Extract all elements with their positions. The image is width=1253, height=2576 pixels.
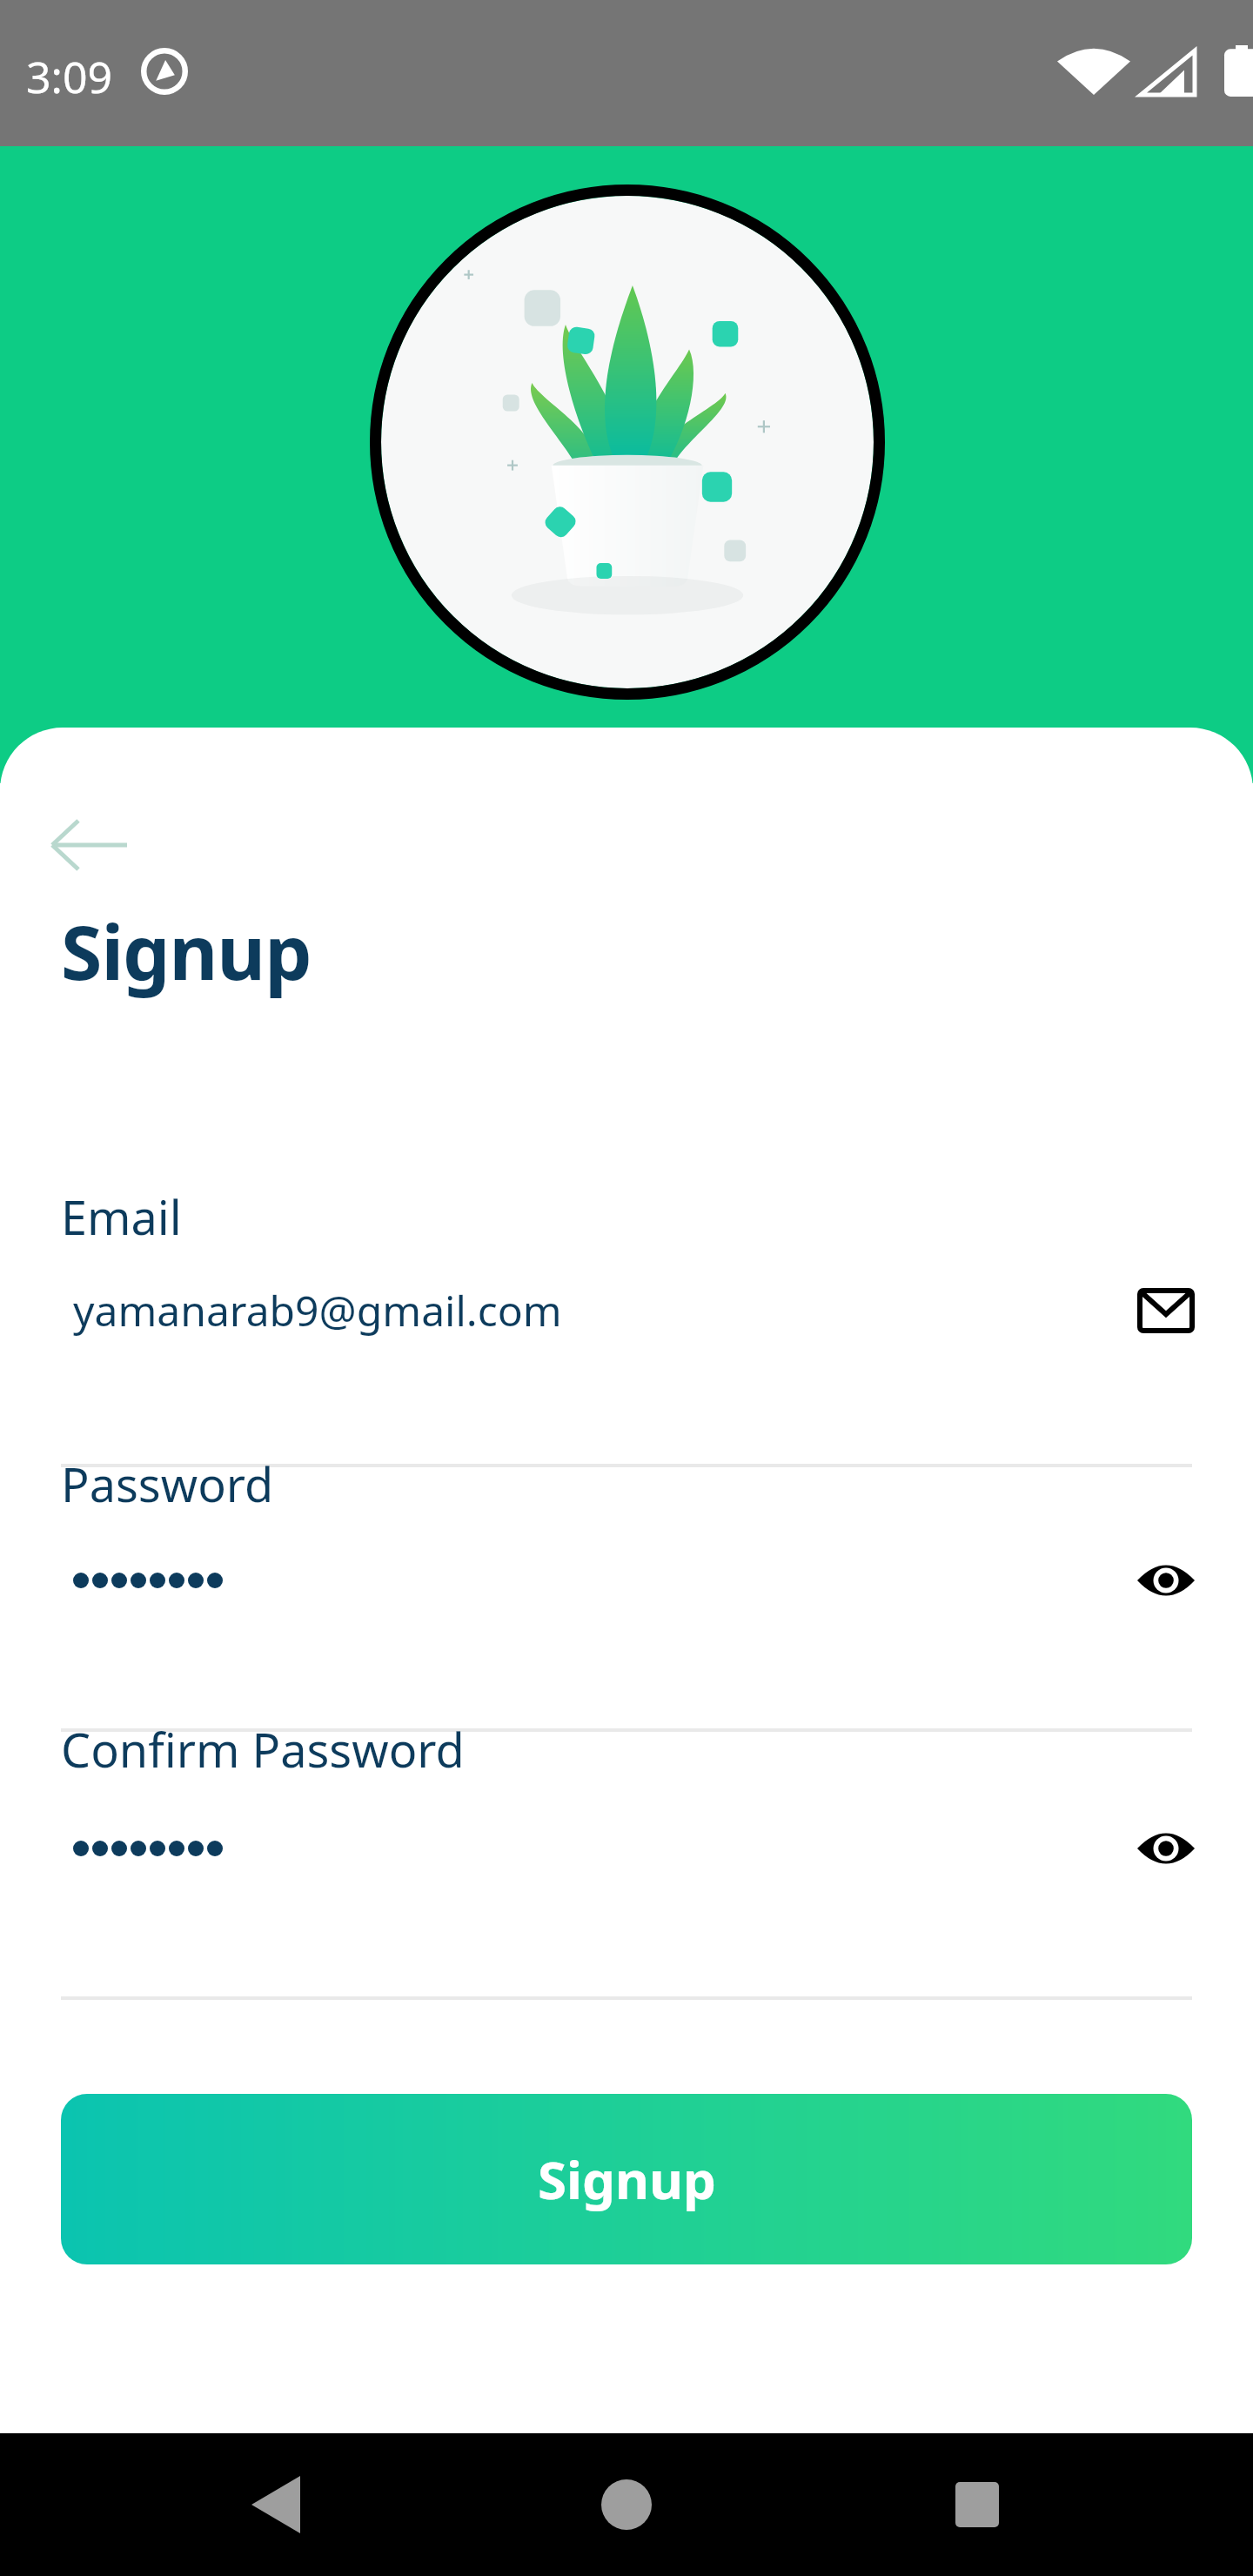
button[interactable]: Email	[1114, 1267, 1218, 1354]
button[interactable]: Recent apps	[921, 2448, 1034, 2561]
button[interactable]: Show password	[1114, 1537, 1218, 1624]
staticText: Signup	[61, 900, 312, 1002]
staticText: 3:09	[26, 47, 113, 106]
button[interactable]: Back	[219, 2448, 332, 2561]
staticText: Email	[61, 1184, 182, 1249]
button[interactable]: Signup	[61, 2094, 1192, 2264]
button[interactable]: Show password	[1114, 1805, 1218, 1892]
staticText: Password	[61, 1452, 274, 1516]
staticText: Signup	[538, 2143, 716, 2215]
staticText: yamanarab9@gmail.com	[73, 1282, 562, 1338]
staticText: Confirm Password	[61, 1717, 465, 1781]
button[interactable]: Home	[570, 2448, 683, 2561]
button[interactable]: Back	[40, 806, 136, 884]
